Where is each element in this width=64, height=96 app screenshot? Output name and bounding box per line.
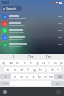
button[interactable] bbox=[2, 13, 62, 20]
button[interactable]: , bbox=[10, 81, 16, 86]
button[interactable]: w bbox=[7, 60, 14, 65]
staticText: ⇧ bbox=[4, 75, 7, 78]
staticText: 9:41 bbox=[2, 0, 9, 5]
button[interactable]: r bbox=[21, 60, 28, 65]
button[interactable]: i bbox=[46, 60, 52, 65]
button[interactable]: z bbox=[11, 74, 18, 79]
staticText: s bbox=[14, 67, 16, 72]
staticText: ⏎ bbox=[56, 82, 59, 85]
staticText: p bbox=[60, 60, 63, 65]
staticText: e bbox=[16, 60, 19, 65]
button[interactable]: l bbox=[55, 67, 61, 72]
staticText: u bbox=[42, 60, 45, 65]
staticText: o bbox=[54, 60, 57, 65]
button[interactable]: k bbox=[49, 67, 55, 72]
button[interactable] bbox=[2, 34, 62, 41]
staticText: j bbox=[45, 67, 47, 72]
button[interactable]: Home bbox=[3, 90, 7, 94]
staticText: d bbox=[20, 67, 23, 72]
button[interactable]: p bbox=[58, 60, 64, 65]
staticText: Search bbox=[6, 7, 17, 11]
button[interactable]: ⏎ bbox=[51, 81, 64, 86]
button[interactable]: g bbox=[31, 67, 37, 72]
button[interactable]: n bbox=[42, 74, 48, 79]
button[interactable]: u bbox=[40, 60, 46, 65]
staticText: t bbox=[30, 60, 32, 65]
staticText: q bbox=[2, 60, 5, 65]
staticText: . bbox=[48, 82, 49, 86]
button[interactable]: d bbox=[18, 67, 25, 72]
staticText: i bbox=[48, 60, 50, 65]
button[interactable]: ⇧ bbox=[0, 74, 11, 79]
button[interactable]: I bbox=[13, 55, 15, 59]
staticText: z bbox=[14, 74, 16, 79]
button[interactable]: o bbox=[52, 60, 58, 65]
staticText: The bbox=[28, 55, 34, 59]
staticText: m bbox=[49, 74, 53, 79]
staticText: b bbox=[38, 74, 41, 79]
button[interactable]: a bbox=[4, 67, 11, 72]
button[interactable]: j bbox=[43, 67, 49, 72]
button[interactable] bbox=[2, 27, 62, 34]
button[interactable]: t bbox=[28, 60, 34, 65]
staticText: n bbox=[44, 74, 47, 79]
button[interactable]: Search bbox=[2, 6, 22, 11]
button[interactable]: The bbox=[28, 55, 34, 59]
staticText: x bbox=[20, 74, 23, 79]
staticText: v bbox=[32, 74, 35, 79]
button[interactable]: f bbox=[25, 67, 31, 72]
staticText: a bbox=[6, 67, 9, 72]
button[interactable]: v bbox=[30, 74, 36, 79]
button[interactable]: b bbox=[36, 74, 42, 79]
button[interactable]: c bbox=[24, 74, 30, 79]
staticText: l bbox=[57, 67, 59, 72]
button[interactable]: h bbox=[37, 67, 43, 72]
button[interactable] bbox=[2, 20, 62, 27]
staticText: c bbox=[26, 74, 28, 79]
staticText: y bbox=[36, 60, 39, 65]
button[interactable]: x bbox=[18, 74, 24, 79]
staticText: , bbox=[13, 82, 14, 86]
staticText: r bbox=[24, 60, 26, 65]
staticText: k bbox=[51, 67, 54, 72]
button[interactable]: e bbox=[14, 60, 21, 65]
button[interactable]: m bbox=[48, 74, 54, 79]
staticText: h bbox=[39, 67, 42, 72]
button[interactable]: I'm bbox=[46, 55, 51, 59]
button[interactable]: ⌫ bbox=[54, 74, 64, 79]
staticText: f bbox=[27, 67, 29, 72]
button[interactable]: . bbox=[45, 81, 51, 86]
staticText: w bbox=[9, 60, 13, 65]
staticText: g bbox=[33, 67, 36, 72]
button[interactable]: y bbox=[34, 60, 40, 65]
button[interactable]: ?123 bbox=[0, 81, 10, 86]
button[interactable]: s bbox=[11, 67, 18, 72]
button[interactable]: q bbox=[0, 60, 7, 65]
button[interactable] bbox=[2, 41, 62, 48]
staticText: ⌫ bbox=[57, 75, 62, 78]
staticText: I'm bbox=[46, 55, 51, 59]
staticText: ?123 bbox=[3, 82, 8, 85]
staticText: I bbox=[13, 55, 15, 59]
